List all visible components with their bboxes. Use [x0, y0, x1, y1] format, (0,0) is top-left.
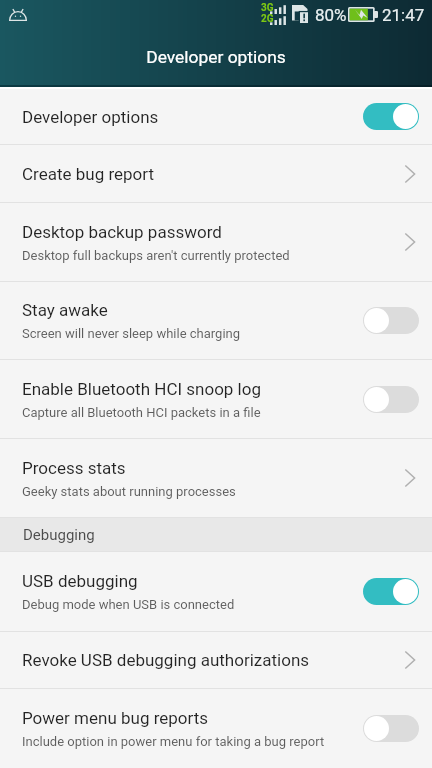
button[interactable]: Developer options	[0, 89, 432, 144]
staticText: Process stats	[22, 458, 126, 478]
button[interactable]: Toggle on	[363, 103, 419, 130]
staticText: Developer options	[146, 47, 286, 67]
staticText: Capture all Bluetooth HCI packets in a f…	[22, 405, 261, 420]
staticText: Power menu bug reports	[22, 708, 209, 728]
staticText: Revoke USB debugging authorizations	[22, 650, 310, 670]
button[interactable]: Desktop backup password	[0, 203, 432, 281]
staticText: Desktop backup password	[22, 222, 222, 242]
staticText: Debug mode when USB is connected	[22, 597, 235, 612]
other: Open	[403, 648, 419, 672]
staticText: Geeky stats about running processes	[22, 484, 236, 499]
button[interactable]: Process stats	[0, 439, 432, 517]
staticText: 3G	[261, 2, 274, 14]
button[interactable]: Toggle off	[363, 715, 419, 742]
button[interactable]: Power menu bug reports	[0, 689, 432, 768]
other: Open	[403, 466, 419, 490]
button[interactable]: Stay awake	[0, 282, 432, 359]
staticText: Debugging	[23, 526, 95, 544]
button[interactable]: Toggle off	[363, 386, 419, 413]
staticText: 2G	[261, 13, 274, 25]
other: SIM card alert	[292, 5, 308, 23]
other: Android	[9, 9, 27, 21]
staticText: Screen will never sleep while charging	[22, 326, 241, 341]
other: Open	[403, 162, 419, 186]
button[interactable]: Enable Bluetooth HCI snoop log	[0, 360, 432, 438]
button[interactable]: USB debugging	[0, 552, 432, 631]
button[interactable]: Toggle on	[363, 578, 419, 605]
staticText: Desktop full backups aren't currently pr…	[22, 248, 290, 263]
staticText: Include option in power menu for taking …	[22, 734, 325, 749]
staticText: 21:47	[382, 5, 425, 25]
button[interactable]: Toggle off	[363, 307, 419, 334]
other: Open	[403, 230, 419, 254]
staticText: Enable Bluetooth HCI snoop log	[22, 379, 261, 399]
staticText: USB debugging	[22, 571, 138, 591]
staticText: 80%	[315, 5, 347, 25]
button[interactable]: Create bug report	[0, 145, 432, 202]
staticText: Create bug report	[22, 164, 154, 184]
staticText: Developer options	[22, 107, 159, 127]
button[interactable]: Revoke USB debugging authorizations	[0, 632, 432, 688]
staticText: Stay awake	[22, 300, 108, 320]
